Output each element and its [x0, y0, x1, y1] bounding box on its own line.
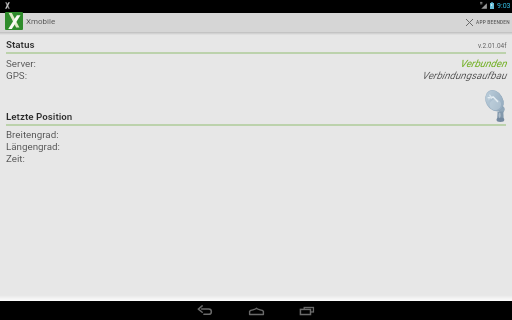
button[interactable]: Recent apps [281, 301, 333, 320]
staticText: Längengrad: [6, 141, 60, 152]
staticText: Letzte Position [6, 111, 73, 122]
staticText: Verbunden [460, 58, 507, 70]
button[interactable]: APP BEENDEN [458, 13, 512, 32]
staticText: GPS: [6, 70, 28, 81]
staticText: Server: [6, 58, 36, 69]
staticText: v.2.01.04f [478, 42, 507, 50]
staticText: Status [6, 39, 35, 50]
staticText: Breitengrad: [6, 129, 59, 140]
button[interactable]: Back [179, 301, 231, 320]
staticText: 9:03 [497, 2, 511, 10]
staticText: Zeit: [6, 153, 25, 164]
staticText: Verbindungsaufbau [422, 70, 507, 82]
staticText: APP BEENDEN [476, 20, 510, 26]
button[interactable]: Home [230, 301, 282, 320]
staticText: Xmobile [26, 17, 56, 26]
